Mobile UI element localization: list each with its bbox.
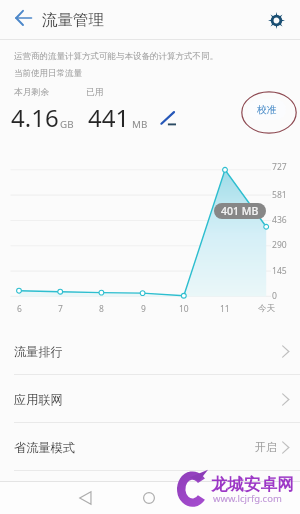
button[interactable]: 省流量模式	[0, 423, 300, 471]
button[interactable]: Back	[67, 481, 103, 514]
staticText: 已用	[86, 87, 104, 98]
staticText: 441	[88, 101, 130, 134]
button[interactable]: Edit	[158, 108, 178, 127]
staticText: 7	[58, 303, 63, 315]
staticText: 今天	[258, 303, 275, 314]
staticText: 4.16	[11, 101, 59, 134]
button[interactable]: 应用联网	[0, 375, 300, 423]
staticText: 流量排行	[14, 344, 63, 359]
button[interactable]: 校准	[248, 99, 286, 120]
button[interactable]: Back	[10, 7, 36, 33]
staticText: 开启	[255, 440, 277, 454]
staticText: 本月剩余	[14, 87, 50, 98]
staticText: 581	[272, 189, 287, 201]
staticText: 9	[141, 303, 146, 315]
staticText: 龙城安卓网	[211, 474, 294, 495]
staticText: GB	[60, 118, 74, 131]
staticText: 145	[272, 265, 287, 277]
staticText: 436	[272, 214, 287, 226]
staticText: 290	[272, 239, 287, 251]
staticText: 校准	[257, 104, 277, 116]
staticText: 流量管理	[42, 10, 104, 30]
staticText: 省流量模式	[14, 440, 75, 455]
staticText: MB	[132, 118, 148, 131]
staticText: 11	[220, 303, 230, 315]
staticText: www.lcjrfg.com	[213, 492, 282, 505]
staticText: 727	[272, 161, 287, 173]
button[interactable]: Home	[131, 481, 167, 514]
staticText: 当前使用日常流量	[14, 68, 82, 79]
staticText: 10	[179, 303, 189, 315]
staticText: 应用联网	[14, 392, 63, 407]
staticText: 6	[17, 303, 22, 315]
staticText: 0	[272, 290, 277, 302]
staticText: 运营商的流量计算方式可能与本设备的计算方式不同。	[14, 51, 218, 62]
staticText: 401 MB	[221, 204, 259, 218]
staticText: 8	[99, 303, 104, 315]
button[interactable]: 流量排行	[0, 327, 300, 375]
button[interactable]: Settings	[264, 8, 289, 33]
